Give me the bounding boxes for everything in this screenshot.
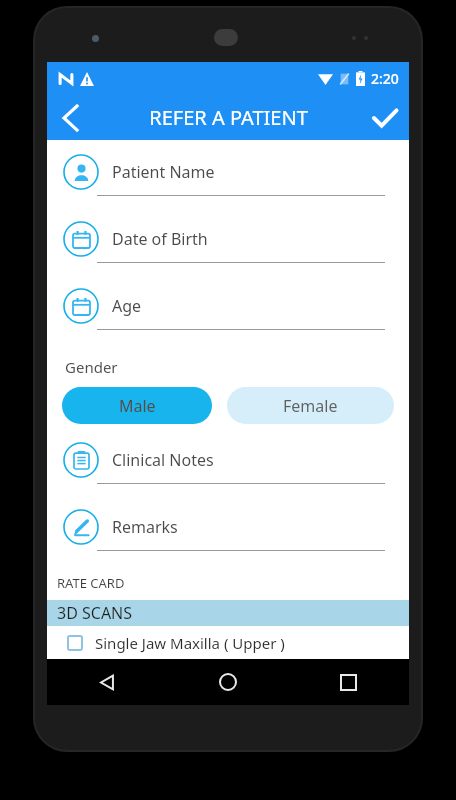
button[interactable]: Home xyxy=(167,659,288,705)
button[interactable]: Patient Name xyxy=(47,148,409,215)
staticText: Date of Birth xyxy=(112,228,208,250)
button[interactable]: Age xyxy=(47,282,409,349)
button[interactable]: Remarks xyxy=(47,503,409,570)
staticText: 2:20 xyxy=(371,69,399,88)
button[interactable]: Clinical Notes xyxy=(47,436,409,503)
staticText: 3D SCANS xyxy=(57,602,133,624)
button[interactable]: Recent apps xyxy=(288,659,409,705)
button[interactable]: Back xyxy=(47,95,93,140)
staticText: Female xyxy=(283,395,338,417)
staticText: Remarks xyxy=(112,516,178,538)
staticText: Single Jaw Maxilla ( Upper ) xyxy=(95,633,285,653)
button[interactable]: Back xyxy=(47,659,167,705)
staticText: Male xyxy=(119,395,156,417)
staticText: RATE CARD xyxy=(57,574,125,592)
staticText: Clinical Notes xyxy=(112,449,214,471)
staticText: Age xyxy=(112,295,142,317)
staticText: Patient Name xyxy=(112,161,215,183)
staticText: REFER A PATIENT xyxy=(149,104,308,131)
button[interactable]: Female xyxy=(227,387,394,424)
button[interactable]: Date of Birth xyxy=(47,215,409,282)
button[interactable]: Male xyxy=(62,387,212,424)
button[interactable]: Submit xyxy=(361,95,409,140)
staticText: Gender xyxy=(65,357,118,377)
button[interactable]: Single Jaw Maxilla ( Upper ) xyxy=(47,626,409,659)
